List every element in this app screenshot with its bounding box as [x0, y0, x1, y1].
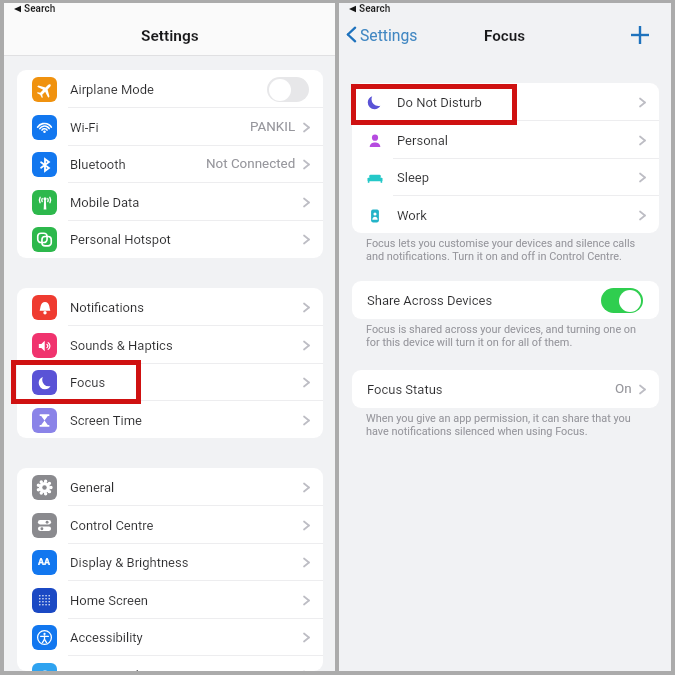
button[interactable]: Sleep [352, 158, 659, 196]
button[interactable]: Wi-Fi [17, 108, 323, 146]
staticText: Display & Brightness [70, 555, 189, 570]
staticText: Mobile Data [70, 195, 140, 210]
staticText: Not Connected [206, 156, 296, 172]
staticText: Siri & Search [70, 668, 143, 671]
button[interactable]: Mobile Data [17, 183, 323, 221]
staticText: Share Across Devices [367, 293, 493, 308]
button[interactable]: Settings [345, 14, 418, 55]
button[interactable]: Bluetooth [17, 145, 323, 183]
button[interactable]: Work [352, 196, 659, 233]
staticText: Focus [484, 27, 526, 45]
button[interactable]: Do Not Disturb [352, 83, 659, 121]
button[interactable]: Personal [352, 121, 659, 159]
button[interactable]: Notifications [17, 288, 323, 326]
staticText: Home Screen [70, 593, 148, 608]
staticText: Search [359, 3, 391, 14]
staticText: When you give an app permission, it can … [366, 412, 641, 437]
button[interactable]: Switch on [601, 288, 643, 313]
button[interactable]: AA [17, 543, 323, 581]
staticText: Work [397, 208, 427, 223]
staticText: Screen Time [70, 413, 142, 428]
staticText: Do Not Disturb [397, 95, 482, 110]
staticText: Notifications [70, 300, 144, 315]
staticText: Accessibility [70, 630, 143, 645]
button[interactable]: Sounds & Haptics [17, 326, 323, 364]
staticText: Sounds & Haptics [70, 338, 173, 353]
staticText: Search [24, 3, 56, 14]
staticText: General [70, 480, 115, 495]
button[interactable]: Personal Hotspot [17, 220, 323, 258]
staticText: Bluetooth [70, 157, 126, 172]
staticText: Focus lets you customise your devices an… [366, 237, 641, 262]
button[interactable]: Screen Time [17, 401, 323, 438]
staticText: PANKIL [250, 119, 296, 135]
button[interactable]: Add Focus [629, 24, 651, 46]
staticText: Personal Hotspot [70, 232, 171, 247]
staticText: Airplane Mode [70, 82, 154, 97]
button[interactable]: Focus [17, 363, 323, 401]
button[interactable]: Accessibility [17, 618, 323, 656]
staticText: Settings [360, 26, 418, 44]
staticText: AA [38, 557, 51, 568]
staticText: Personal [397, 133, 448, 148]
staticText: Control Centre [70, 518, 154, 533]
button[interactable]: Airplane Mode [17, 70, 323, 108]
staticText: Sleep [397, 170, 429, 185]
staticText: Focus [70, 375, 106, 390]
staticText: On [615, 381, 632, 397]
button[interactable]: Share Across Devices [352, 281, 659, 319]
button[interactable]: Home Screen [17, 581, 323, 619]
button[interactable]: Switch off [267, 77, 309, 102]
button[interactable]: Focus Status [352, 370, 659, 408]
staticText: Settings [141, 27, 199, 45]
staticText: Focus Status [367, 382, 443, 397]
button[interactable]: General [17, 468, 323, 506]
button[interactable]: Control Centre [17, 506, 323, 544]
button[interactable]: Siri & Search [17, 656, 323, 671]
staticText: Wi-Fi [70, 120, 99, 135]
staticText: Focus is shared across your devices, and… [366, 323, 641, 348]
